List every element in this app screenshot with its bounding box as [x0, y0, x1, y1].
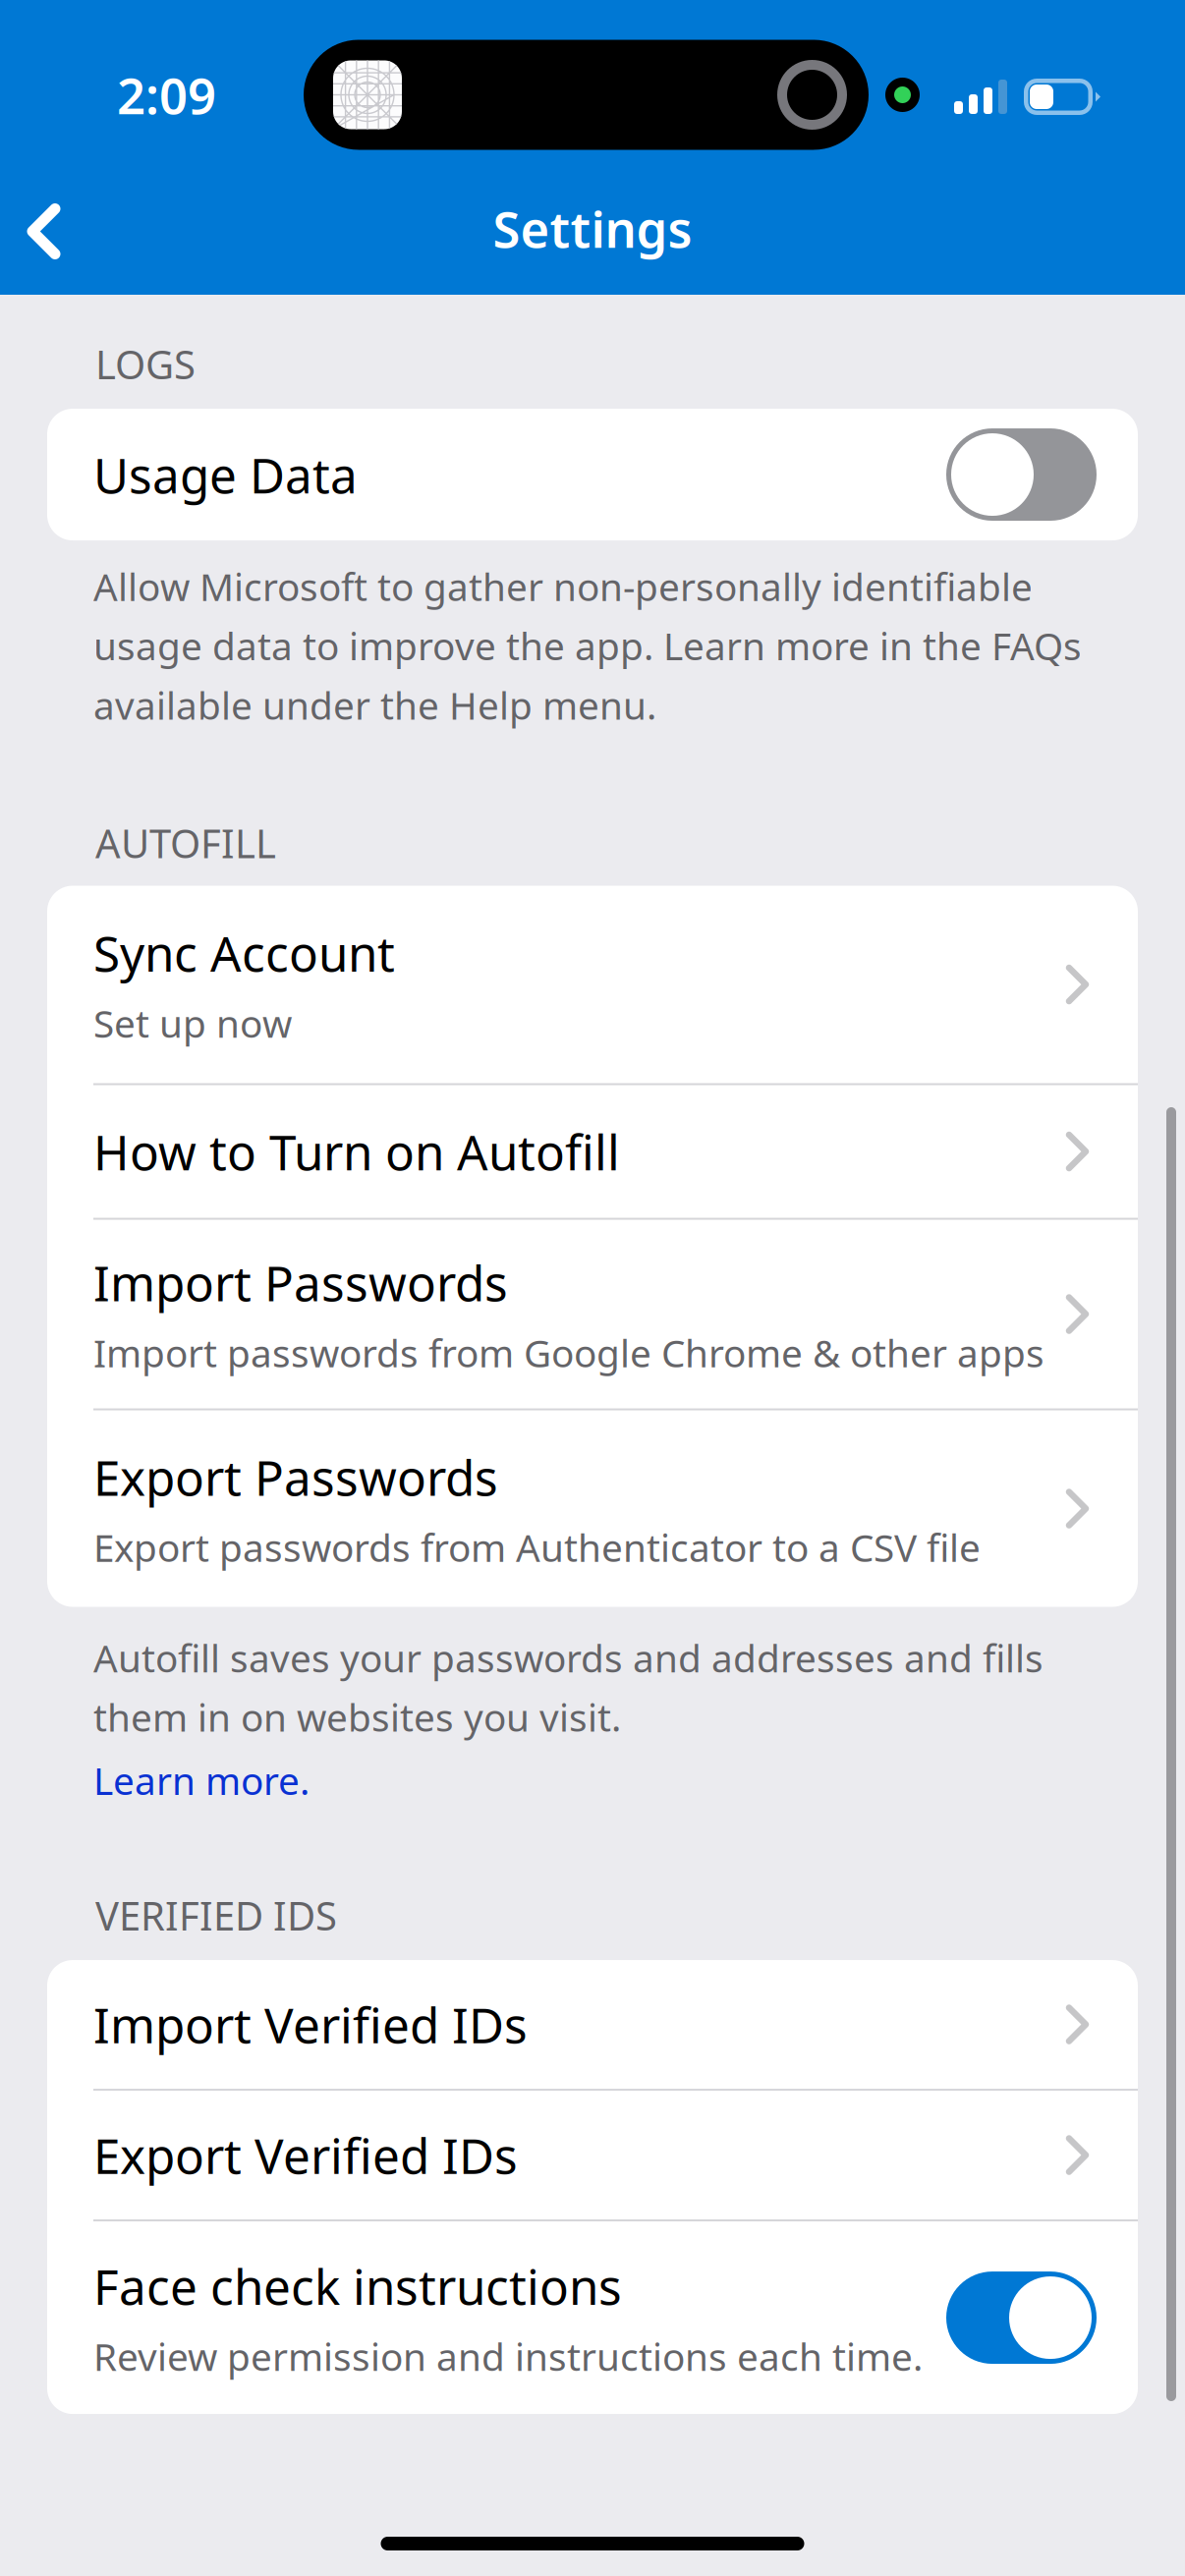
staticText: Face check instructions: [93, 2254, 622, 2318]
staticText: Export Passwords: [93, 1445, 498, 1509]
staticText: Settings: [493, 195, 692, 262]
button[interactable]: Usage Data: [47, 409, 1138, 540]
staticText: Allow Microsoft to gather non-personally…: [93, 561, 1033, 611]
staticText: Sync Account: [93, 921, 395, 985]
staticText: Import Passwords: [93, 1250, 508, 1315]
staticText: Learn more.: [93, 1755, 310, 1805]
button[interactable]: Export Verified IDs: [47, 2091, 1138, 2219]
staticText: Autofill saves your passwords and addres…: [93, 1632, 1044, 1683]
staticText: Import Verified IDs: [93, 1992, 528, 2057]
button[interactable]: Sync Account: [47, 886, 1138, 1083]
staticText: LOGS: [95, 338, 196, 390]
button[interactable]: Import Passwords: [47, 1220, 1138, 1408]
staticText: them in on websites you visit.: [93, 1692, 621, 1742]
staticText: Export passwords from Authenticator to a…: [93, 1522, 981, 1572]
staticText: Review permission and instructions each …: [93, 2331, 923, 2381]
button[interactable]: How to Turn on Autofill: [47, 1085, 1138, 1218]
staticText: Import passwords from Google Chrome & ot…: [93, 1327, 1044, 1378]
staticText: Usage Data: [93, 442, 358, 507]
button[interactable]: Learn more.: [93, 1755, 310, 1805]
staticText: available under the Help menu.: [93, 680, 656, 730]
staticText: Set up now: [93, 998, 292, 1048]
button[interactable]: Face check instructions: [47, 2221, 1138, 2414]
staticText: 2:09: [117, 62, 216, 128]
staticText: How to Turn on Autofill: [93, 1119, 620, 1184]
button[interactable]: Export Passwords: [47, 1410, 1138, 1607]
button[interactable]: Back: [0, 168, 118, 295]
staticText: Export Verified IDs: [93, 2123, 518, 2187]
staticText: VERIFIED IDS: [95, 1889, 337, 1941]
staticText: usage data to improve the app. Learn mor…: [93, 620, 1082, 671]
staticText: AUTOFILL: [95, 817, 276, 869]
button[interactable]: Import Verified IDs: [47, 1960, 1138, 2089]
